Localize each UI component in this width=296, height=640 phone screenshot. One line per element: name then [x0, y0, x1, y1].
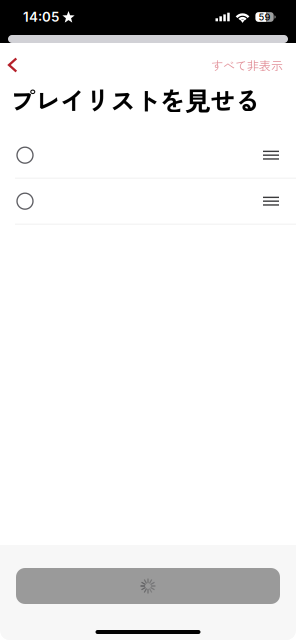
button[interactable] [0, 179, 296, 224]
button[interactable]: Back [0, 43, 44, 87]
staticText: プレイリストを見せる [10, 81, 260, 118]
button[interactable] [0, 133, 296, 178]
staticText: すべて非表示 [211, 56, 283, 74]
button[interactable]: すべて非表示 [211, 43, 296, 87]
button[interactable]: Loading [0, 568, 296, 604]
staticText: 14:05 [23, 9, 59, 25]
staticText: 59 [259, 11, 271, 23]
